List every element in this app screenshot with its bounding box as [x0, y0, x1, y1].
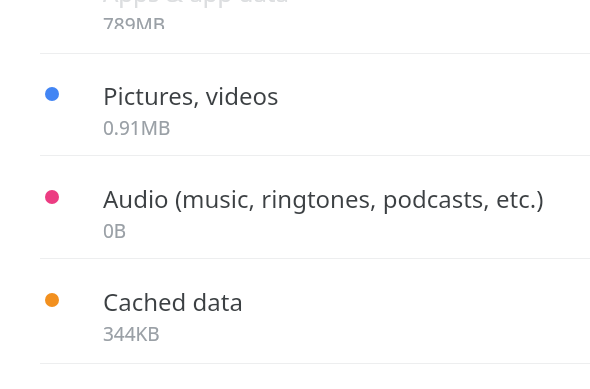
- staticText: Pictures, videos: [103, 79, 279, 112]
- staticText: Audio (music, ringtones, podcasts, etc.): [103, 182, 544, 215]
- button[interactable]: Pictures, videos: [0, 54, 590, 155]
- button[interactable]: Cached data: [0, 259, 590, 363]
- button[interactable]: Apps & app data: [0, 0, 590, 53]
- staticText: Cached data: [103, 285, 243, 318]
- staticText: 0.91MB: [103, 115, 171, 141]
- button[interactable]: Audio (music, ringtones, podcasts, etc.): [0, 156, 590, 258]
- staticText: 344KB: [103, 321, 160, 347]
- staticText: Apps & app data: [103, 0, 289, 9]
- staticText: 0B: [103, 218, 127, 244]
- staticText: 789MB: [103, 12, 166, 29]
